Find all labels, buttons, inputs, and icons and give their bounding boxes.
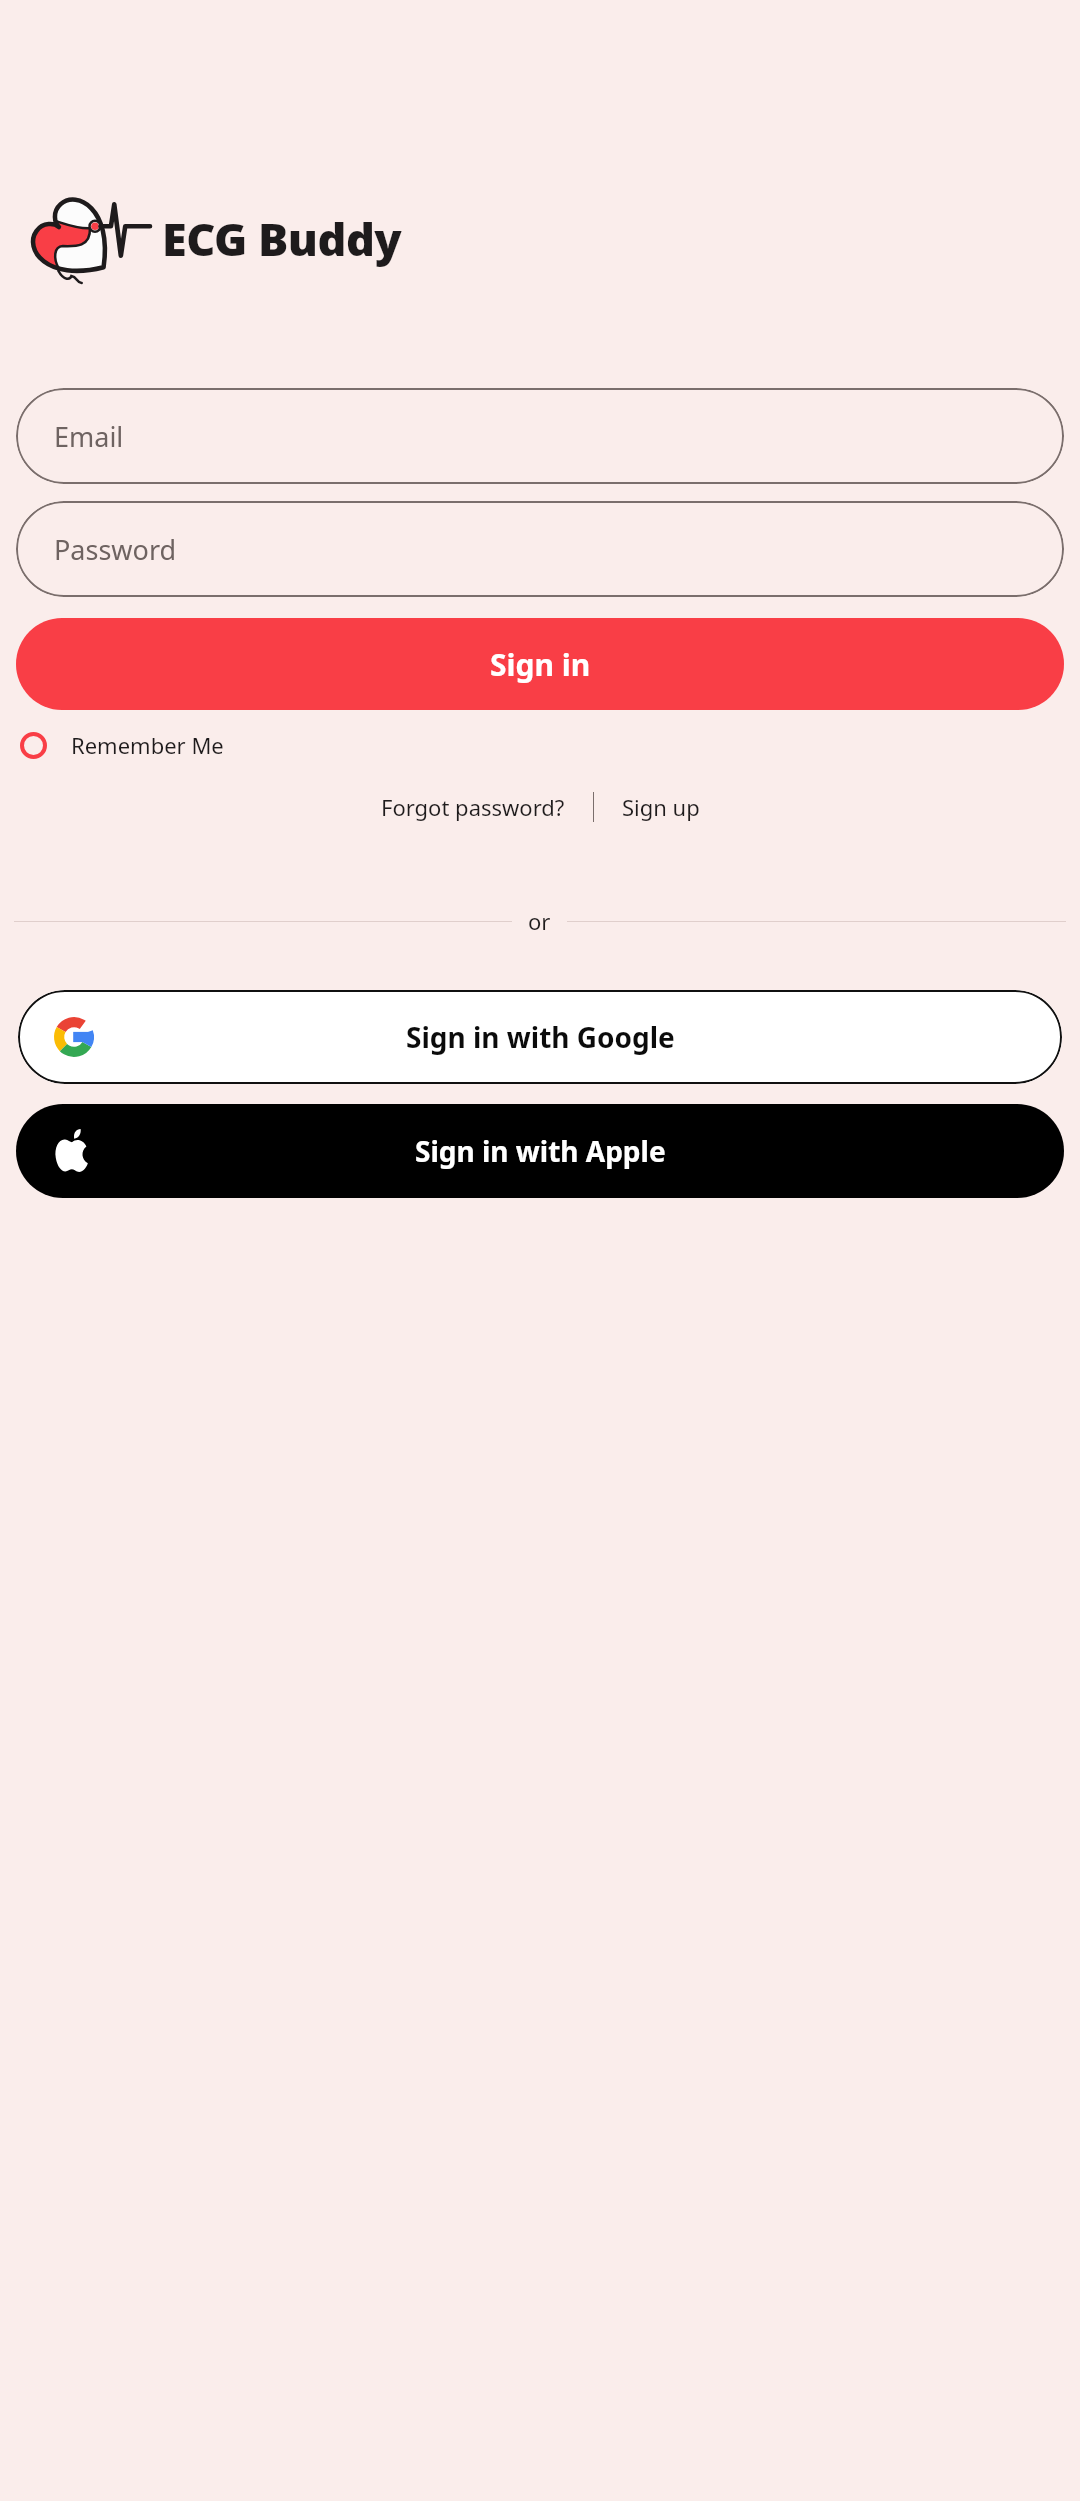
staticText: Email	[54, 418, 124, 455]
button[interactable]: Sign in	[16, 618, 1064, 710]
button[interactable]: Remember Me	[16, 722, 228, 768]
staticText: Sign up	[622, 792, 700, 822]
other: Apple	[54, 1129, 90, 1173]
staticText: ECG Buddy	[162, 208, 402, 269]
button[interactable]: Forgot password?	[375, 786, 571, 828]
staticText: Sign in with Apple	[415, 1132, 666, 1170]
button[interactable]: Email	[16, 388, 1064, 484]
button[interactable]: Apple	[16, 1104, 1064, 1198]
button[interactable]: Password	[16, 501, 1064, 597]
staticText: Sign in	[490, 644, 591, 685]
staticText: Forgot password?	[381, 792, 565, 822]
button[interactable]: Sign in with Google	[18, 990, 1062, 1084]
staticText: Sign in with Google	[406, 1018, 675, 1056]
button[interactable]: Sign up	[616, 786, 706, 828]
staticText: Password	[54, 531, 177, 568]
staticText: Remember Me	[71, 730, 224, 760]
staticText: or	[528, 906, 551, 936]
